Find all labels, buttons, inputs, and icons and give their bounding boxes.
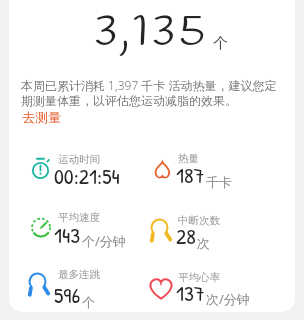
staticText: 去测量 — [22, 109, 61, 125]
staticText: 个 — [213, 34, 228, 53]
staticText: 137 — [176, 278, 205, 308]
staticText: 中断次数 — [178, 214, 220, 227]
staticText: 平均速度 — [58, 211, 100, 224]
staticText: 热量 — [178, 152, 199, 165]
staticText: 3,135 — [94, 3, 209, 63]
button[interactable] — [28, 265, 153, 311]
button[interactable] — [28, 150, 153, 196]
staticText: 期测量体重，以评估您运动减脂的效果。 — [21, 93, 237, 108]
button[interactable] — [148, 149, 273, 195]
staticText: 次/分钟 — [206, 290, 250, 308]
staticText: 本周已累计消耗 1,397 千卡 活动热量，建议您定 — [21, 77, 277, 93]
staticText: 运动时间 — [58, 153, 100, 166]
button[interactable] — [148, 211, 273, 257]
staticText: 千卡 — [206, 174, 232, 190]
staticText: 次 — [197, 235, 210, 251]
button[interactable] — [148, 268, 273, 314]
button[interactable]: 去测量 — [22, 109, 61, 125]
staticText: 596 — [54, 280, 81, 310]
staticText: 28 — [176, 221, 196, 251]
staticText: 187 — [176, 160, 205, 190]
staticText: 最多连跳 — [58, 268, 100, 281]
staticText: 个/分钟 — [82, 232, 126, 250]
staticText: 个 — [82, 294, 95, 310]
staticText: 143 — [54, 220, 81, 250]
button[interactable] — [28, 208, 153, 254]
staticText: 平均心率 — [178, 271, 220, 284]
staticText: 00:21:54 — [54, 161, 120, 191]
